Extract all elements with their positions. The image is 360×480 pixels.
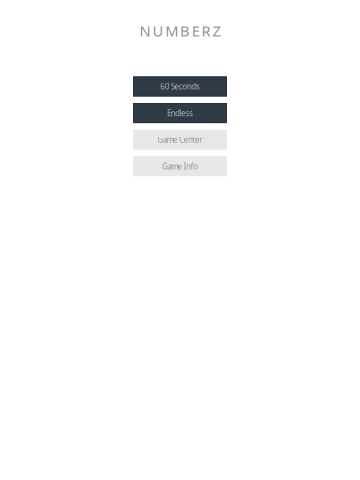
button[interactable]: 60 Seconds [133, 76, 227, 96]
staticText: 60 Seconds [160, 81, 200, 92]
button[interactable]: Game Info [133, 156, 227, 176]
button[interactable]: Endless [133, 103, 227, 123]
button[interactable]: Game Center [133, 130, 227, 150]
staticText: Endless [167, 108, 193, 118]
staticText: NUMBERZ [140, 21, 220, 40]
staticText: Game Info [162, 161, 198, 172]
staticText: Game Center [157, 134, 202, 145]
